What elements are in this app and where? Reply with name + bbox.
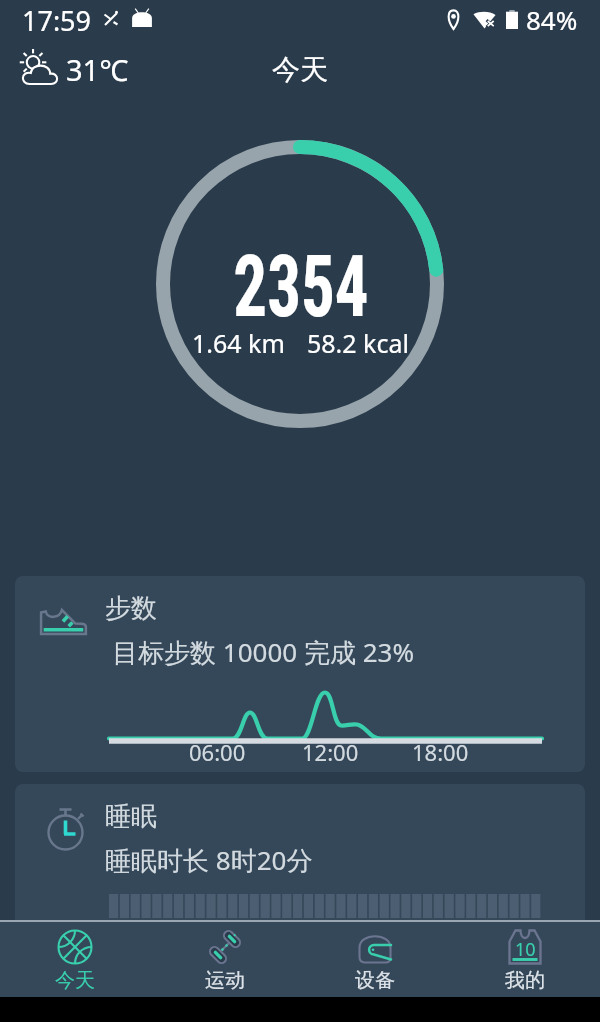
staticText: 睡眠时长 8时20分 (105, 842, 313, 878)
staticText: 设备 (355, 968, 395, 993)
staticText: 今天 (272, 52, 328, 87)
staticText: 今天 (55, 968, 95, 993)
staticText: 58.2 kcal (307, 326, 409, 360)
button[interactable]: 我的 (450, 922, 600, 997)
button[interactable]: 睡眠 (15, 784, 585, 984)
staticText: 步数 (105, 592, 157, 625)
staticText: 运动 (205, 968, 245, 993)
staticText: 12:00 (302, 737, 359, 767)
button[interactable]: 运动 (150, 922, 300, 997)
staticText: 31℃ (66, 50, 129, 89)
button[interactable]: 步数 (15, 576, 585, 772)
staticText: 10 (515, 937, 536, 962)
staticText: 睡眠 (105, 800, 157, 833)
staticText: 2354 (233, 237, 369, 337)
staticText: 1.64 km (192, 326, 285, 360)
button[interactable]: 今天 (0, 922, 150, 997)
staticText: 目标步数 10000 完成 23% (112, 634, 414, 670)
staticText: 06:00 (189, 737, 246, 767)
button[interactable]: 设备 (300, 922, 450, 997)
staticText: 18:00 (412, 737, 469, 767)
staticText: 我的 (505, 968, 545, 993)
staticText: 84% (526, 2, 578, 37)
staticText: 17:59 (22, 2, 92, 39)
